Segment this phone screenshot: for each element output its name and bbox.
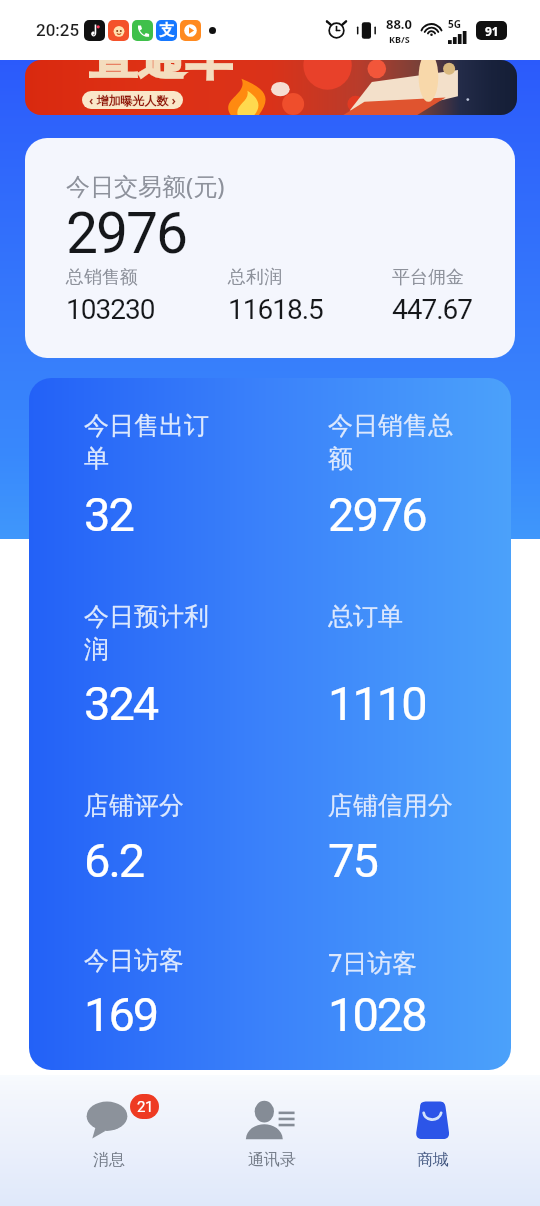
staticText: 平台佣金 (392, 266, 464, 289)
staticText: 总订单 (328, 601, 403, 632)
button[interactable]: 总订单 (328, 601, 511, 726)
button[interactable]: 今日访客 (84, 945, 274, 1037)
staticText: 店铺评分 (84, 790, 184, 821)
staticText: KB/S (389, 33, 410, 45)
staticText: 2976 (66, 200, 187, 267)
staticText: 今日交易额(元) (66, 169, 225, 202)
staticText: 直通车 (89, 60, 233, 83)
staticText: 88.0 (386, 15, 412, 33)
staticText: 20:25 (36, 20, 80, 40)
staticText: 通讯录 (191, 1150, 353, 1170)
staticText: 2976 (328, 487, 426, 542)
staticText: 103230 (66, 293, 155, 326)
staticText: 75 (328, 833, 377, 888)
button[interactable]: 店铺信用分 (328, 790, 511, 883)
button[interactable]: 商城 (351, 1075, 513, 1206)
staticText: 32 (84, 487, 133, 542)
button[interactable]: 今日预计利 润 (84, 601, 274, 726)
staticText: 91 (485, 23, 499, 39)
other: 通讯录 (245, 1099, 287, 1141)
staticText: 1110 (328, 676, 426, 731)
staticText: 支 (159, 21, 174, 40)
staticText: 今日访客 (84, 945, 184, 976)
staticText: 324 (84, 676, 158, 731)
button[interactable]: 直通车 (25, 60, 517, 115)
staticText: 总销售额 (66, 266, 138, 289)
staticText: 今日销售总 额 (328, 410, 453, 474)
button[interactable]: 7日访客 (328, 945, 511, 1037)
button[interactable]: 店铺评分 (84, 790, 274, 883)
staticText: ‹ 增加曝光人数 › (89, 92, 177, 108)
staticText: 21 (137, 1098, 153, 1116)
button[interactable]: 通讯录 (185, 1075, 347, 1206)
button[interactable]: 今日售出订 单 (84, 410, 274, 537)
staticText: 商城 (352, 1150, 514, 1170)
staticText: 总利润 (228, 266, 282, 289)
other: 消息 (86, 1099, 128, 1141)
staticText: 6.2 (84, 833, 144, 888)
staticText: 11618.5 (228, 293, 323, 326)
staticText: 1028 (328, 987, 426, 1042)
staticText: 消息 (28, 1150, 190, 1170)
staticText: 店铺信用分 (328, 790, 453, 821)
button[interactable]: 消息 (26, 1075, 188, 1206)
button[interactable]: 今日销售总 额 (328, 410, 511, 537)
staticText: 7日访客 (328, 945, 418, 979)
staticText: 5G (448, 17, 461, 31)
button[interactable]: 今日交易额(元) (25, 138, 515, 358)
staticText: 169 (84, 987, 158, 1042)
staticText: 今日预计利 润 (84, 601, 209, 665)
staticText: 今日售出订 单 (84, 410, 209, 474)
other: 商城 (411, 1099, 453, 1141)
staticText: 447.67 (392, 293, 473, 326)
